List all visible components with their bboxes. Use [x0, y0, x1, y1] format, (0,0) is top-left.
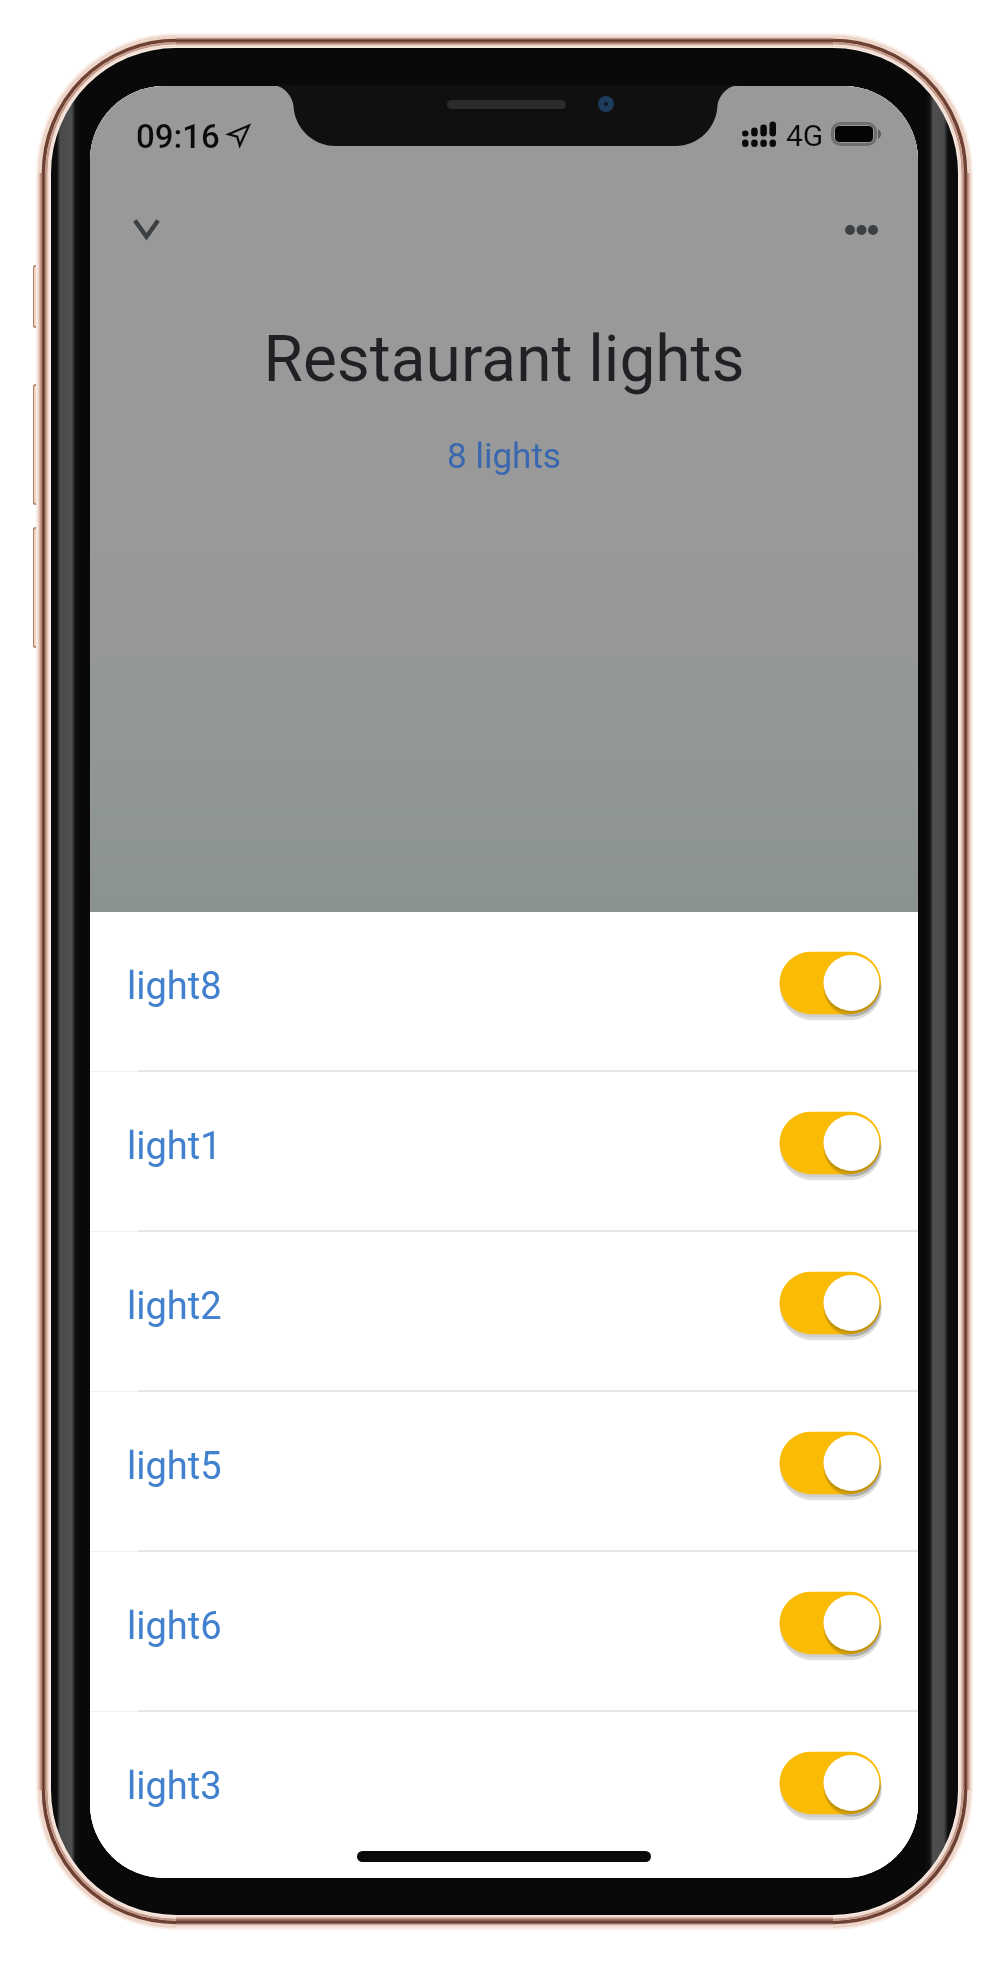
staticText: 4G: [786, 118, 824, 153]
staticText: light3: [127, 1764, 222, 1809]
staticText: Restaurant lights: [90, 322, 918, 397]
staticText: light1: [127, 1124, 222, 1169]
staticText: light2: [127, 1284, 222, 1329]
button[interactable]: light6: [90, 1552, 918, 1710]
staticText: light6: [127, 1604, 222, 1649]
staticText: 8 lights: [90, 436, 918, 477]
staticText: light5: [127, 1444, 222, 1489]
button[interactable]: light3 toggle: [765, 1740, 895, 1826]
button[interactable]: More options: [827, 196, 895, 264]
button[interactable]: light6 toggle: [765, 1580, 895, 1666]
button[interactable]: light1 toggle: [765, 1100, 895, 1186]
button[interactable]: light2: [90, 1232, 918, 1390]
button[interactable]: light5: [90, 1392, 918, 1550]
staticText: light8: [127, 964, 222, 1009]
staticText: 09:16: [136, 117, 220, 156]
button[interactable]: light1: [90, 1072, 918, 1230]
button[interactable]: light8 toggle: [765, 940, 895, 1026]
button[interactable]: light3: [90, 1712, 918, 1870]
button[interactable]: light5 toggle: [765, 1420, 895, 1506]
button[interactable]: light8: [90, 912, 918, 1070]
button[interactable]: Collapse: [112, 195, 180, 263]
button[interactable]: light2 toggle: [765, 1260, 895, 1346]
